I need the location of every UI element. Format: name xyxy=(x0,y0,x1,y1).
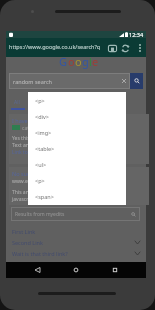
staticText: e xyxy=(92,54,99,69)
button[interactable]: <p> xyxy=(28,92,126,108)
button[interactable]: <span> xyxy=(28,188,126,204)
button[interactable]: Back xyxy=(29,262,45,278)
staticText: <img> xyxy=(35,129,52,136)
button[interactable]: Tabs xyxy=(105,41,119,55)
staticText: 12:34 xyxy=(129,31,144,38)
staticText: https://www.google.co.uk/search?q xyxy=(9,43,107,50)
button[interactable]: Refresh xyxy=(118,41,132,55)
staticText: o xyxy=(68,54,75,69)
button[interactable]: <table> xyxy=(28,140,126,156)
staticText: Link to something xyxy=(12,149,55,156)
button[interactable]: random search xyxy=(9,73,130,89)
staticText: Second Link xyxy=(12,239,43,246)
button[interactable]: Home xyxy=(68,262,84,278)
staticText: random search xyxy=(13,78,52,85)
button[interactable]: Wait is that third link? xyxy=(6,248,146,259)
button[interactable]: Search xyxy=(130,73,143,89)
staticText: Wait is that third link? xyxy=(12,250,68,257)
staticText: G xyxy=(59,54,68,69)
button[interactable]: <ul> xyxy=(28,156,126,172)
staticText: All xyxy=(14,99,20,106)
staticText: g xyxy=(82,54,89,69)
staticText: javascript things xyxy=(12,196,51,203)
button[interactable]: <p> xyxy=(28,172,126,188)
staticText: Text and more text xyxy=(12,142,56,149)
staticText: I have something to tell you xyxy=(12,117,84,124)
staticText: <div> xyxy=(35,113,49,120)
staticText: l xyxy=(89,54,92,69)
staticText: <p> xyxy=(35,177,45,184)
staticText: <p> xyxy=(35,97,45,104)
staticText: cats xyxy=(22,125,32,132)
staticText: www.example.com xyxy=(12,178,57,185)
staticText: Results from myedits xyxy=(15,211,65,218)
button[interactable]: Second Link xyxy=(6,237,146,248)
staticText: o xyxy=(75,54,82,69)
staticText: No such thing as a bad idea xyxy=(12,170,84,177)
button[interactable]: <div> xyxy=(28,108,126,124)
button[interactable]: <img> xyxy=(28,124,126,140)
staticText: <table> xyxy=(35,145,55,152)
staticText: First Link xyxy=(12,228,36,235)
button[interactable]: Results from myedits xyxy=(11,207,140,221)
staticText: <span> xyxy=(35,193,54,200)
staticText: This and that xyxy=(12,189,43,196)
button[interactable]: More options xyxy=(133,41,146,55)
staticText: <ul> xyxy=(35,161,47,168)
staticText: Yes this is text about a thing xyxy=(12,135,78,142)
button[interactable]: Recent apps xyxy=(107,262,123,278)
